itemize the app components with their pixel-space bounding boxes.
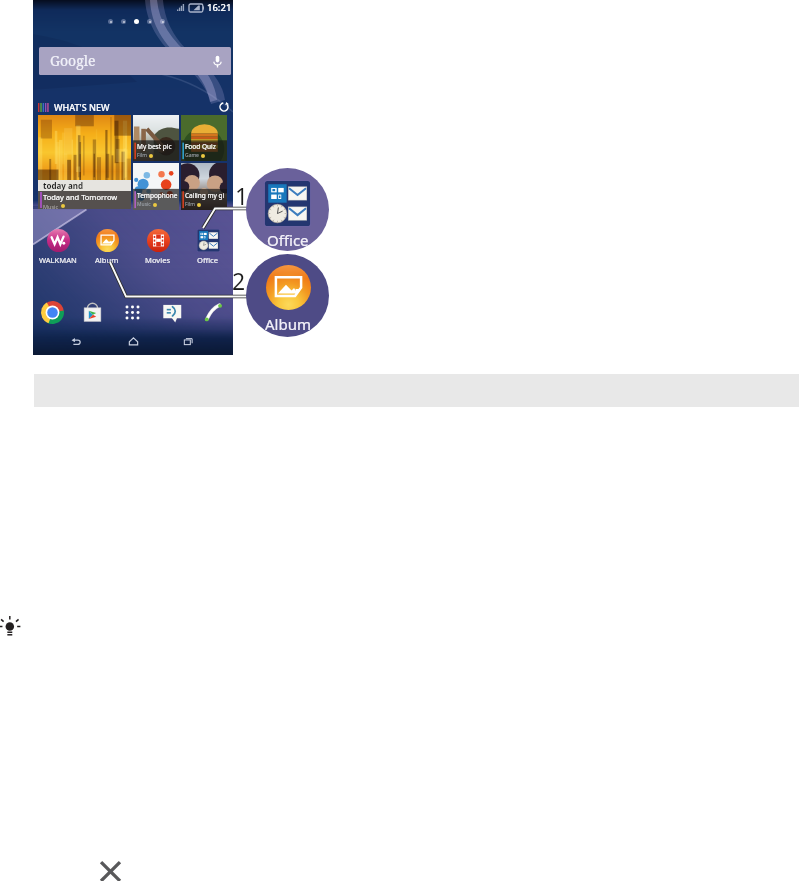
- staticText: Office: [267, 230, 309, 250]
- button[interactable]: All apps: [121, 301, 144, 324]
- staticText: today and: [43, 180, 84, 191]
- button[interactable]: Messaging: [161, 301, 184, 324]
- staticText: Movies: [145, 255, 171, 265]
- button[interactable]: Office: [246, 168, 329, 251]
- staticText: 2: [232, 265, 246, 296]
- button[interactable]: Album: [82, 229, 132, 265]
- staticText: Google: [50, 51, 96, 70]
- staticText: 16:21: [207, 1, 232, 14]
- button[interactable]: Play Store: [81, 301, 104, 324]
- staticText: 1: [235, 180, 249, 211]
- button[interactable]: Google: [39, 47, 231, 75]
- staticText: Game: [185, 152, 199, 159]
- button[interactable]: Album: [246, 254, 329, 337]
- button[interactable]: Recents: [182, 335, 195, 348]
- staticText: Office: [197, 255, 219, 265]
- button[interactable]: Close: [100, 861, 121, 881]
- staticText: Calling my gi: [185, 191, 225, 200]
- staticText: WHAT'S NEW: [54, 101, 110, 113]
- button[interactable]: Phone: [201, 301, 224, 324]
- button[interactable]: Home: [127, 335, 140, 348]
- staticText: WALKMAN: [39, 255, 77, 265]
- staticText: Music: [43, 203, 59, 209]
- button[interactable]: Food Quiz: [181, 115, 227, 161]
- button[interactable]: Movies: [133, 229, 183, 265]
- button[interactable]: Chrome: [41, 301, 64, 324]
- button[interactable]: Calling my gi: [181, 163, 227, 210]
- staticText: Music: [137, 201, 151, 208]
- staticText: Album: [95, 255, 119, 265]
- staticText: Tempophone: [137, 191, 178, 200]
- staticText: Film: [185, 201, 195, 208]
- staticText: Album: [265, 314, 311, 334]
- staticText: Film: [137, 152, 147, 159]
- button[interactable]: Tempophone: [133, 163, 179, 210]
- button[interactable]: Office: [183, 229, 233, 265]
- staticText: Food Quiz: [185, 142, 216, 151]
- button[interactable]: WALKMAN: [33, 229, 83, 265]
- button[interactable]: Back: [70, 335, 83, 348]
- staticText: My best pic: [137, 142, 172, 151]
- staticText: Today and Tomorrow: [43, 192, 118, 202]
- button[interactable]: My best pic: [133, 115, 179, 161]
